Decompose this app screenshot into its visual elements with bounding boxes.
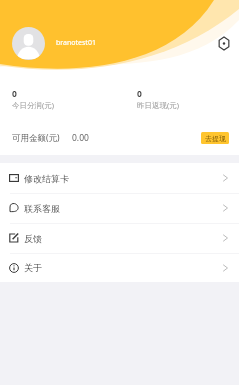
- button[interactable]: 联系客服: [0, 193, 239, 223]
- button[interactable]: 去提现: [201, 132, 229, 144]
- staticText: branotest01: [56, 38, 96, 48]
- button[interactable]: 修改结算卡: [0, 163, 239, 193]
- staticText: 昨日返现(元): [137, 100, 179, 110]
- staticText: 去提现: [205, 134, 226, 143]
- staticText: 联系客服: [24, 203, 60, 214]
- staticText: 0: [12, 88, 17, 100]
- button[interactable]: Settings: [212, 32, 235, 55]
- staticText: 0: [137, 88, 142, 100]
- staticText: 可用金额(元): [12, 132, 60, 144]
- button[interactable]: 反馈: [0, 223, 239, 253]
- staticText: 关于: [24, 262, 42, 273]
- staticText: 0.00: [72, 132, 89, 144]
- staticText: 反馈: [24, 233, 42, 244]
- staticText: 今日分润(元): [12, 100, 54, 110]
- button[interactable]: 关于: [0, 253, 239, 282]
- staticText: 修改结算卡: [24, 173, 69, 184]
